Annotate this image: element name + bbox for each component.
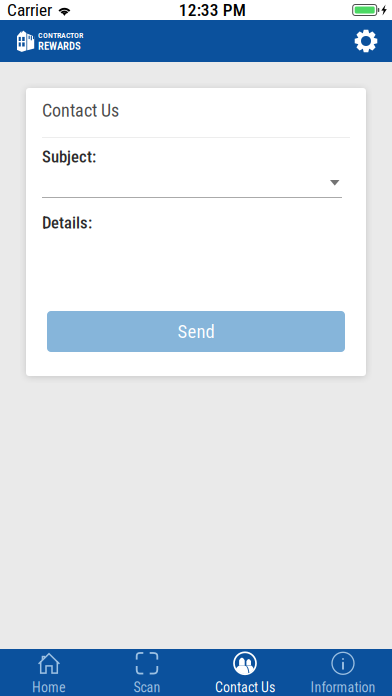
button[interactable]: Scan bbox=[98, 649, 196, 696]
button[interactable]: Send bbox=[47, 311, 345, 352]
staticText: Subject: bbox=[42, 147, 96, 166]
staticText: 12:33 PM bbox=[179, 0, 246, 20]
staticText: Information bbox=[310, 679, 375, 696]
staticText: Contact Us bbox=[42, 100, 119, 121]
staticText: Contact Us bbox=[215, 679, 275, 696]
staticText: Send bbox=[177, 321, 214, 342]
button[interactable]: Home bbox=[0, 649, 98, 696]
staticText: CONTRACTOR bbox=[38, 31, 83, 40]
staticText: Carrier bbox=[7, 0, 52, 20]
button[interactable]: Contact Us bbox=[196, 649, 294, 696]
staticText: REWARDS bbox=[38, 40, 81, 52]
staticText: Home bbox=[32, 679, 66, 696]
staticText: Scan bbox=[133, 679, 160, 696]
staticText: Details: bbox=[42, 213, 92, 232]
button[interactable]: Settings bbox=[345, 20, 387, 62]
button[interactable]: Information bbox=[294, 649, 392, 696]
